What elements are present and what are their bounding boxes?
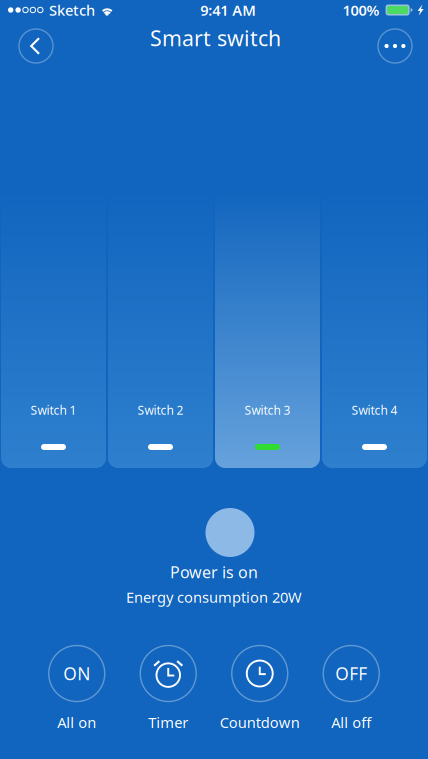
- staticText: All off: [331, 712, 371, 732]
- staticText: 100%: [343, 0, 380, 20]
- staticText: Switch 3: [244, 402, 290, 418]
- button[interactable]: ON: [31, 645, 122, 732]
- staticText: All on: [57, 712, 96, 732]
- staticText: Energy consumption 20W: [126, 587, 302, 607]
- staticText: ON: [63, 662, 90, 685]
- button[interactable]: Back: [14, 24, 58, 68]
- staticText: Countdown: [220, 712, 300, 732]
- button[interactable]: Switch 4: [322, 190, 427, 468]
- staticText: 9:41 AM: [200, 0, 256, 20]
- staticText: Switch 1: [30, 402, 76, 418]
- staticText: Switch 2: [137, 402, 183, 418]
- button[interactable]: Switch 1: [1, 190, 106, 468]
- staticText: Timer: [148, 712, 188, 732]
- button[interactable]: Switch 2: [108, 190, 213, 468]
- button[interactable]: Countdown: [214, 645, 305, 732]
- button[interactable]: Timer: [122, 645, 214, 732]
- button[interactable]: More options: [373, 24, 417, 68]
- button[interactable]: Switch 3: [215, 190, 320, 468]
- button[interactable]: OFF: [305, 645, 397, 732]
- staticText: Smart switch: [150, 24, 281, 52]
- staticText: Sketch: [49, 0, 95, 20]
- staticText: Power is on: [170, 561, 258, 583]
- staticText: Switch 4: [351, 402, 397, 418]
- staticText: OFF: [335, 662, 367, 685]
